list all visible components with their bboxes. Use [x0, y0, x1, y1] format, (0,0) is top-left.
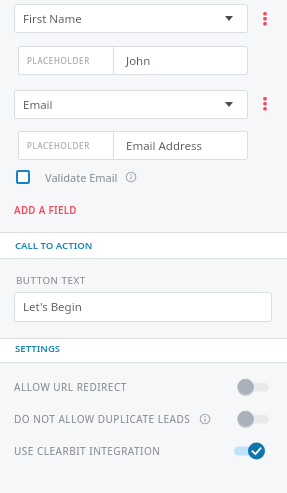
button[interactable] — [237, 378, 269, 396]
button[interactable] — [263, 97, 267, 111]
button[interactable] — [16, 170, 30, 184]
button[interactable]: First Name — [14, 4, 248, 33]
staticText: ALLOW URL REDIRECT — [14, 380, 127, 394]
staticText: Email Address — [126, 138, 203, 154]
staticText: PLACEHOLDER — [27, 140, 90, 151]
staticText: ADD A FIELD — [14, 204, 77, 217]
staticText: BUTTON TEXT — [16, 274, 86, 287]
staticText: Email — [23, 97, 53, 113]
button[interactable]: PLACEHOLDER — [18, 46, 248, 75]
staticText: Let's Begin — [23, 299, 82, 315]
staticText: First Name — [23, 11, 82, 27]
button[interactable] — [263, 12, 267, 26]
button[interactable]: PLACEHOLDER — [18, 131, 248, 160]
button[interactable]: ADD A FIELD — [14, 202, 104, 218]
button[interactable]: Let's Begin — [14, 292, 272, 322]
staticText: DO NOT ALLOW DUPLICATE LEADS — [14, 412, 191, 426]
staticText: CALL TO ACTION — [15, 239, 93, 252]
staticText: SETTINGS — [15, 342, 61, 355]
staticText: USE CLEARBIT INTEGRATION — [14, 444, 161, 458]
button[interactable]: Email — [14, 90, 248, 119]
staticText: Validate Email — [45, 170, 118, 185]
staticText: PLACEHOLDER — [27, 55, 90, 66]
staticText: John — [126, 53, 151, 69]
button[interactable] — [234, 442, 266, 460]
button[interactable] — [237, 410, 269, 428]
